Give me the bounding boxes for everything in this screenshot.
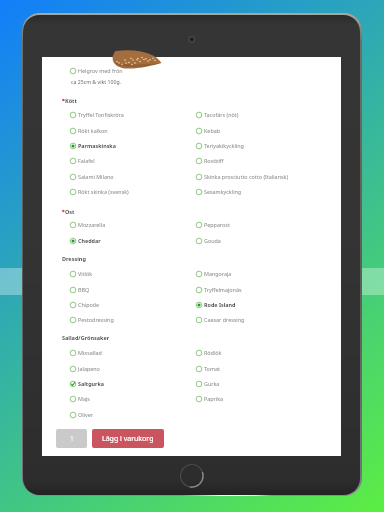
button[interactable]: Tryffelmajonäs bbox=[195, 282, 335, 297]
staticText: Paprika bbox=[204, 395, 224, 402]
button[interactable]: Jalapeno bbox=[69, 361, 195, 376]
button[interactable]: Gouda bbox=[195, 233, 335, 248]
button[interactable]: Rökt skinka (svensk) bbox=[69, 184, 195, 199]
staticText: Cheddar bbox=[78, 237, 101, 244]
button[interactable]: Rode Island bbox=[195, 297, 335, 312]
staticText: Skinka prosciutto cotto (Italiansk) bbox=[204, 173, 289, 180]
staticText: Caesar dressing bbox=[204, 316, 245, 323]
staticText: Pestodressing bbox=[78, 316, 114, 323]
button[interactable]: Caesar dressing bbox=[195, 312, 335, 327]
staticText: Tomat bbox=[204, 365, 220, 372]
button[interactable]: Kebab bbox=[195, 123, 335, 138]
button[interactable]: 1 bbox=[56, 429, 87, 448]
staticText: ca 25cm & vikt 100g. bbox=[71, 78, 121, 85]
staticText: Salami Milano bbox=[78, 173, 114, 180]
staticText: Rödlök bbox=[204, 349, 222, 356]
staticText: Rökt kalkon bbox=[78, 127, 108, 134]
button[interactable]: Rödlök bbox=[195, 345, 335, 360]
button[interactable]: Tacofärs (nöt) bbox=[195, 107, 335, 122]
staticText: Dressing bbox=[62, 255, 86, 262]
staticText: Tryffel Tonfiskröra bbox=[78, 111, 124, 118]
button[interactable]: Tryffel Tonfiskröra bbox=[69, 107, 195, 122]
staticText: Rostbiff bbox=[204, 157, 224, 164]
button[interactable]: Gurka bbox=[195, 376, 335, 391]
button[interactable]: Teriyakikyckling bbox=[195, 138, 335, 153]
staticText: Sallad/Grönsaker bbox=[62, 334, 110, 341]
button[interactable]: Saltgurka bbox=[69, 376, 195, 391]
staticText: Pepparost bbox=[204, 221, 230, 228]
staticText: Helgrov med frön bbox=[78, 67, 123, 74]
staticText: Falafel bbox=[78, 157, 95, 164]
button[interactable]: Tomat bbox=[195, 361, 335, 376]
staticText: Chipotle bbox=[78, 301, 100, 308]
staticText: Gouda bbox=[204, 237, 221, 244]
button[interactable]: Lägg i varukorg bbox=[92, 429, 164, 448]
button[interactable]: Salami Milano bbox=[69, 169, 195, 184]
button[interactable]: Mangoraja bbox=[195, 266, 335, 281]
staticText: Tryffelmajonäs bbox=[204, 286, 242, 293]
button[interactable]: Majs bbox=[69, 391, 195, 406]
staticText: Tacofärs (nöt) bbox=[204, 111, 239, 118]
staticText: Kött bbox=[65, 97, 77, 104]
button[interactable]: Parmaskinska bbox=[69, 138, 195, 153]
staticText: Jalapeno bbox=[78, 365, 100, 372]
button[interactable]: Pestodressing bbox=[69, 312, 195, 327]
button[interactable]: Rökt kalkon bbox=[69, 123, 195, 138]
button[interactable]: Pepparost bbox=[195, 217, 335, 232]
button[interactable]: Falafel bbox=[69, 153, 195, 168]
staticText: Majs bbox=[78, 395, 90, 402]
button[interactable]: BBQ bbox=[69, 282, 195, 297]
staticText: Mangoraja bbox=[204, 270, 232, 277]
staticText: Mozzarella bbox=[78, 221, 106, 228]
button[interactable]: Chipotle bbox=[69, 297, 195, 312]
button[interactable]: Mozzarella bbox=[69, 217, 195, 232]
button[interactable]: Paprika bbox=[195, 391, 335, 406]
staticText: Rode Island bbox=[204, 301, 236, 308]
staticText: Oliver bbox=[78, 411, 93, 418]
staticText: Lägg i varukorg bbox=[102, 434, 154, 444]
staticText: BBQ bbox=[78, 286, 90, 293]
staticText: Mixsallad bbox=[78, 349, 102, 356]
staticText: Teriyakikyckling bbox=[204, 142, 244, 149]
staticText: Gurka bbox=[204, 380, 220, 387]
button[interactable]: Rostbiff bbox=[195, 153, 335, 168]
button[interactable]: Cheddar bbox=[69, 233, 195, 248]
staticText: Sesamkyckling bbox=[204, 188, 242, 195]
staticText: Kebab bbox=[204, 127, 221, 134]
button[interactable]: Oliver bbox=[69, 407, 195, 422]
button[interactable]: Sesamkyckling bbox=[195, 184, 335, 199]
staticText: Rökt skinka (svensk) bbox=[78, 188, 129, 195]
button[interactable]: Helgrov med frön bbox=[69, 63, 195, 78]
staticText: Vitlök bbox=[78, 270, 93, 277]
button[interactable]: Mixsallad bbox=[69, 345, 195, 360]
button[interactable]: Vitlök bbox=[69, 266, 195, 281]
staticText: 1 bbox=[70, 434, 74, 443]
staticText: Saltgurka bbox=[78, 380, 105, 387]
staticText: Parmaskinska bbox=[78, 142, 116, 149]
staticText: Ost bbox=[65, 208, 75, 215]
button[interactable]: Skinka prosciutto cotto (Italiansk) bbox=[195, 169, 335, 184]
